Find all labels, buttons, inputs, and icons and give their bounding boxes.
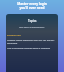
staticText: Why a password manager beats a notebook xyxy=(7,47,51,50)
staticText: Two-factor authentication xyxy=(19,26,45,29)
staticText: Creating strong passwords that you can a… xyxy=(7,39,57,45)
staticText: Password tips xyxy=(7,34,21,37)
staticText: Master every login you'll ever need xyxy=(17,2,47,10)
staticText: Topics xyxy=(28,19,37,23)
